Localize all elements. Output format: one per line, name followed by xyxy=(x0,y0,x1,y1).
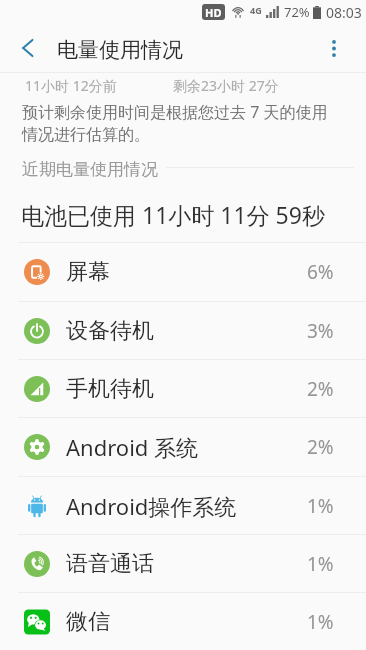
button[interactable]: 手机待机 xyxy=(0,360,366,417)
staticText: 4G xyxy=(250,4,262,16)
staticText: 3% xyxy=(307,318,334,344)
staticText: 预计剩余使用时间是根据您过去 7 天的使用情况进行估算的。 xyxy=(22,101,332,145)
staticText: 电池已使用 11小时 11分 59秒 xyxy=(21,199,325,230)
staticText: 近期电量使用情况 xyxy=(22,159,158,180)
staticText: 剩余23小时 27分 xyxy=(173,76,279,95)
button[interactable]: More options xyxy=(302,24,366,72)
staticText: 11小时 12分前 xyxy=(25,76,117,95)
button[interactable]: 微信 xyxy=(0,593,366,650)
staticText: 08:03 xyxy=(326,3,362,22)
staticText: 电量使用情况 xyxy=(57,37,183,63)
staticText: 2% xyxy=(307,376,334,402)
button[interactable]: Back xyxy=(0,24,55,72)
staticText: 6% xyxy=(307,259,334,285)
staticText: Android操作系统 xyxy=(66,491,237,521)
staticText: 语音通话 xyxy=(66,550,154,578)
staticText: 1% xyxy=(307,551,334,577)
staticText: 屏幕 xyxy=(66,258,110,286)
button[interactable]: Android操作系统 xyxy=(0,477,366,534)
staticText: 72% xyxy=(284,3,310,21)
staticText: 微信 xyxy=(66,608,110,636)
button[interactable]: Android 系统 xyxy=(0,418,366,476)
staticText: 1% xyxy=(307,493,334,519)
button[interactable]: 屏幕 xyxy=(0,243,366,301)
button[interactable]: 语音通话 xyxy=(0,535,366,592)
staticText: 1% xyxy=(307,609,334,635)
button[interactable]: 设备待机 xyxy=(0,302,366,359)
staticText: 2% xyxy=(307,434,334,460)
staticText: 手机待机 xyxy=(66,375,154,403)
staticText: HD xyxy=(205,5,222,20)
staticText: Android 系统 xyxy=(66,432,199,462)
staticText: 设备待机 xyxy=(66,317,154,345)
